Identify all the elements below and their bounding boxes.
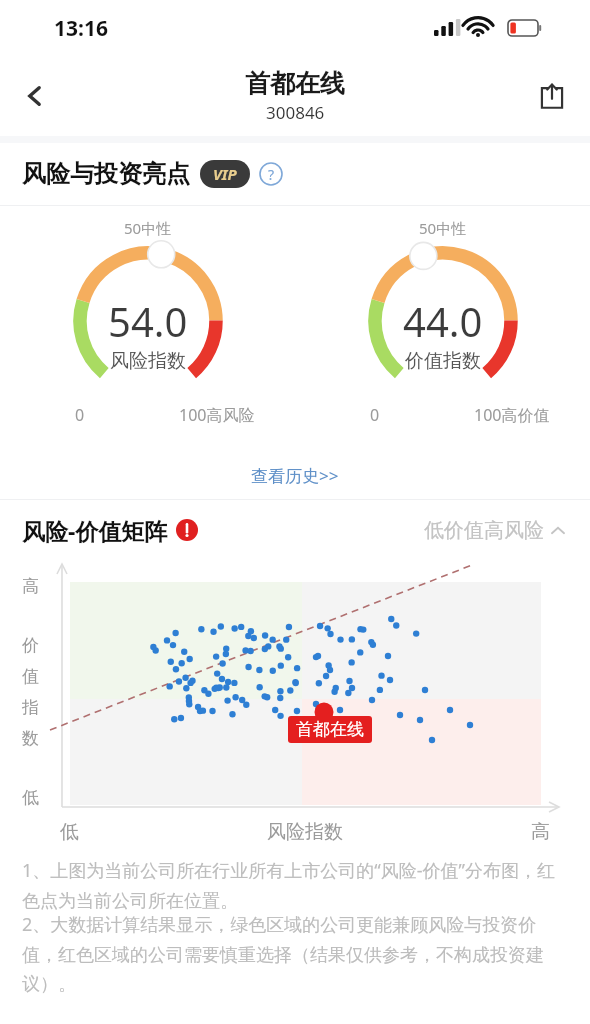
staticText: 低 xyxy=(22,787,39,808)
staticText: 风险-价值矩阵 xyxy=(22,515,168,546)
staticText: 值 xyxy=(22,666,39,687)
staticText: 50中性 xyxy=(419,218,467,238)
staticText: 首都在线 xyxy=(245,68,345,99)
staticText: 风险指数 xyxy=(110,349,186,373)
staticText: 风险指数 xyxy=(267,820,343,844)
staticText: 风险与投资亮点 xyxy=(22,159,190,189)
staticText: ? xyxy=(268,165,275,184)
staticText: 低价值高风险 xyxy=(424,518,544,543)
button[interactable]: 查看历史>> xyxy=(235,458,355,493)
button[interactable]: 低价值高风险 xyxy=(420,514,570,547)
button[interactable]: Share xyxy=(514,56,590,136)
staticText: 0 xyxy=(370,404,380,426)
button[interactable]: Warning xyxy=(176,519,198,541)
staticText: 低 xyxy=(60,820,79,844)
button[interactable]: Back xyxy=(0,56,70,136)
staticText: 0 xyxy=(75,404,85,426)
staticText: VIP xyxy=(213,164,237,184)
staticText: 数 xyxy=(22,728,39,749)
staticText: 指 xyxy=(22,697,39,718)
staticText: 300846 xyxy=(266,101,325,124)
button[interactable]: Help xyxy=(259,162,283,186)
staticText: 价值指数 xyxy=(405,349,481,373)
button[interactable]: 首都在线 xyxy=(288,716,372,743)
staticText: 54.0 xyxy=(108,294,188,348)
staticText: 高 xyxy=(531,820,550,844)
staticText: 高 xyxy=(22,576,39,597)
staticText: 100高价值 xyxy=(474,404,550,426)
staticText: 50中性 xyxy=(124,218,172,238)
staticText: 100高风险 xyxy=(179,404,255,426)
staticText: 2、大数据计算结果显示，绿色区域的公司更能兼顾风险与投资价值，红色区域的公司需要… xyxy=(22,912,568,995)
staticText: 价 xyxy=(22,635,39,656)
staticText: 44.0 xyxy=(403,294,483,348)
staticText: 13:16 xyxy=(54,14,108,43)
button[interactable]: VIP xyxy=(200,160,250,188)
staticText: 首都在线 xyxy=(296,719,364,740)
staticText: 查看历史>> xyxy=(251,464,339,487)
staticText: 1、上图为当前公司所在行业所有上市公司的“风险-价值”分布图，红色点为当前公司所… xyxy=(22,858,568,912)
